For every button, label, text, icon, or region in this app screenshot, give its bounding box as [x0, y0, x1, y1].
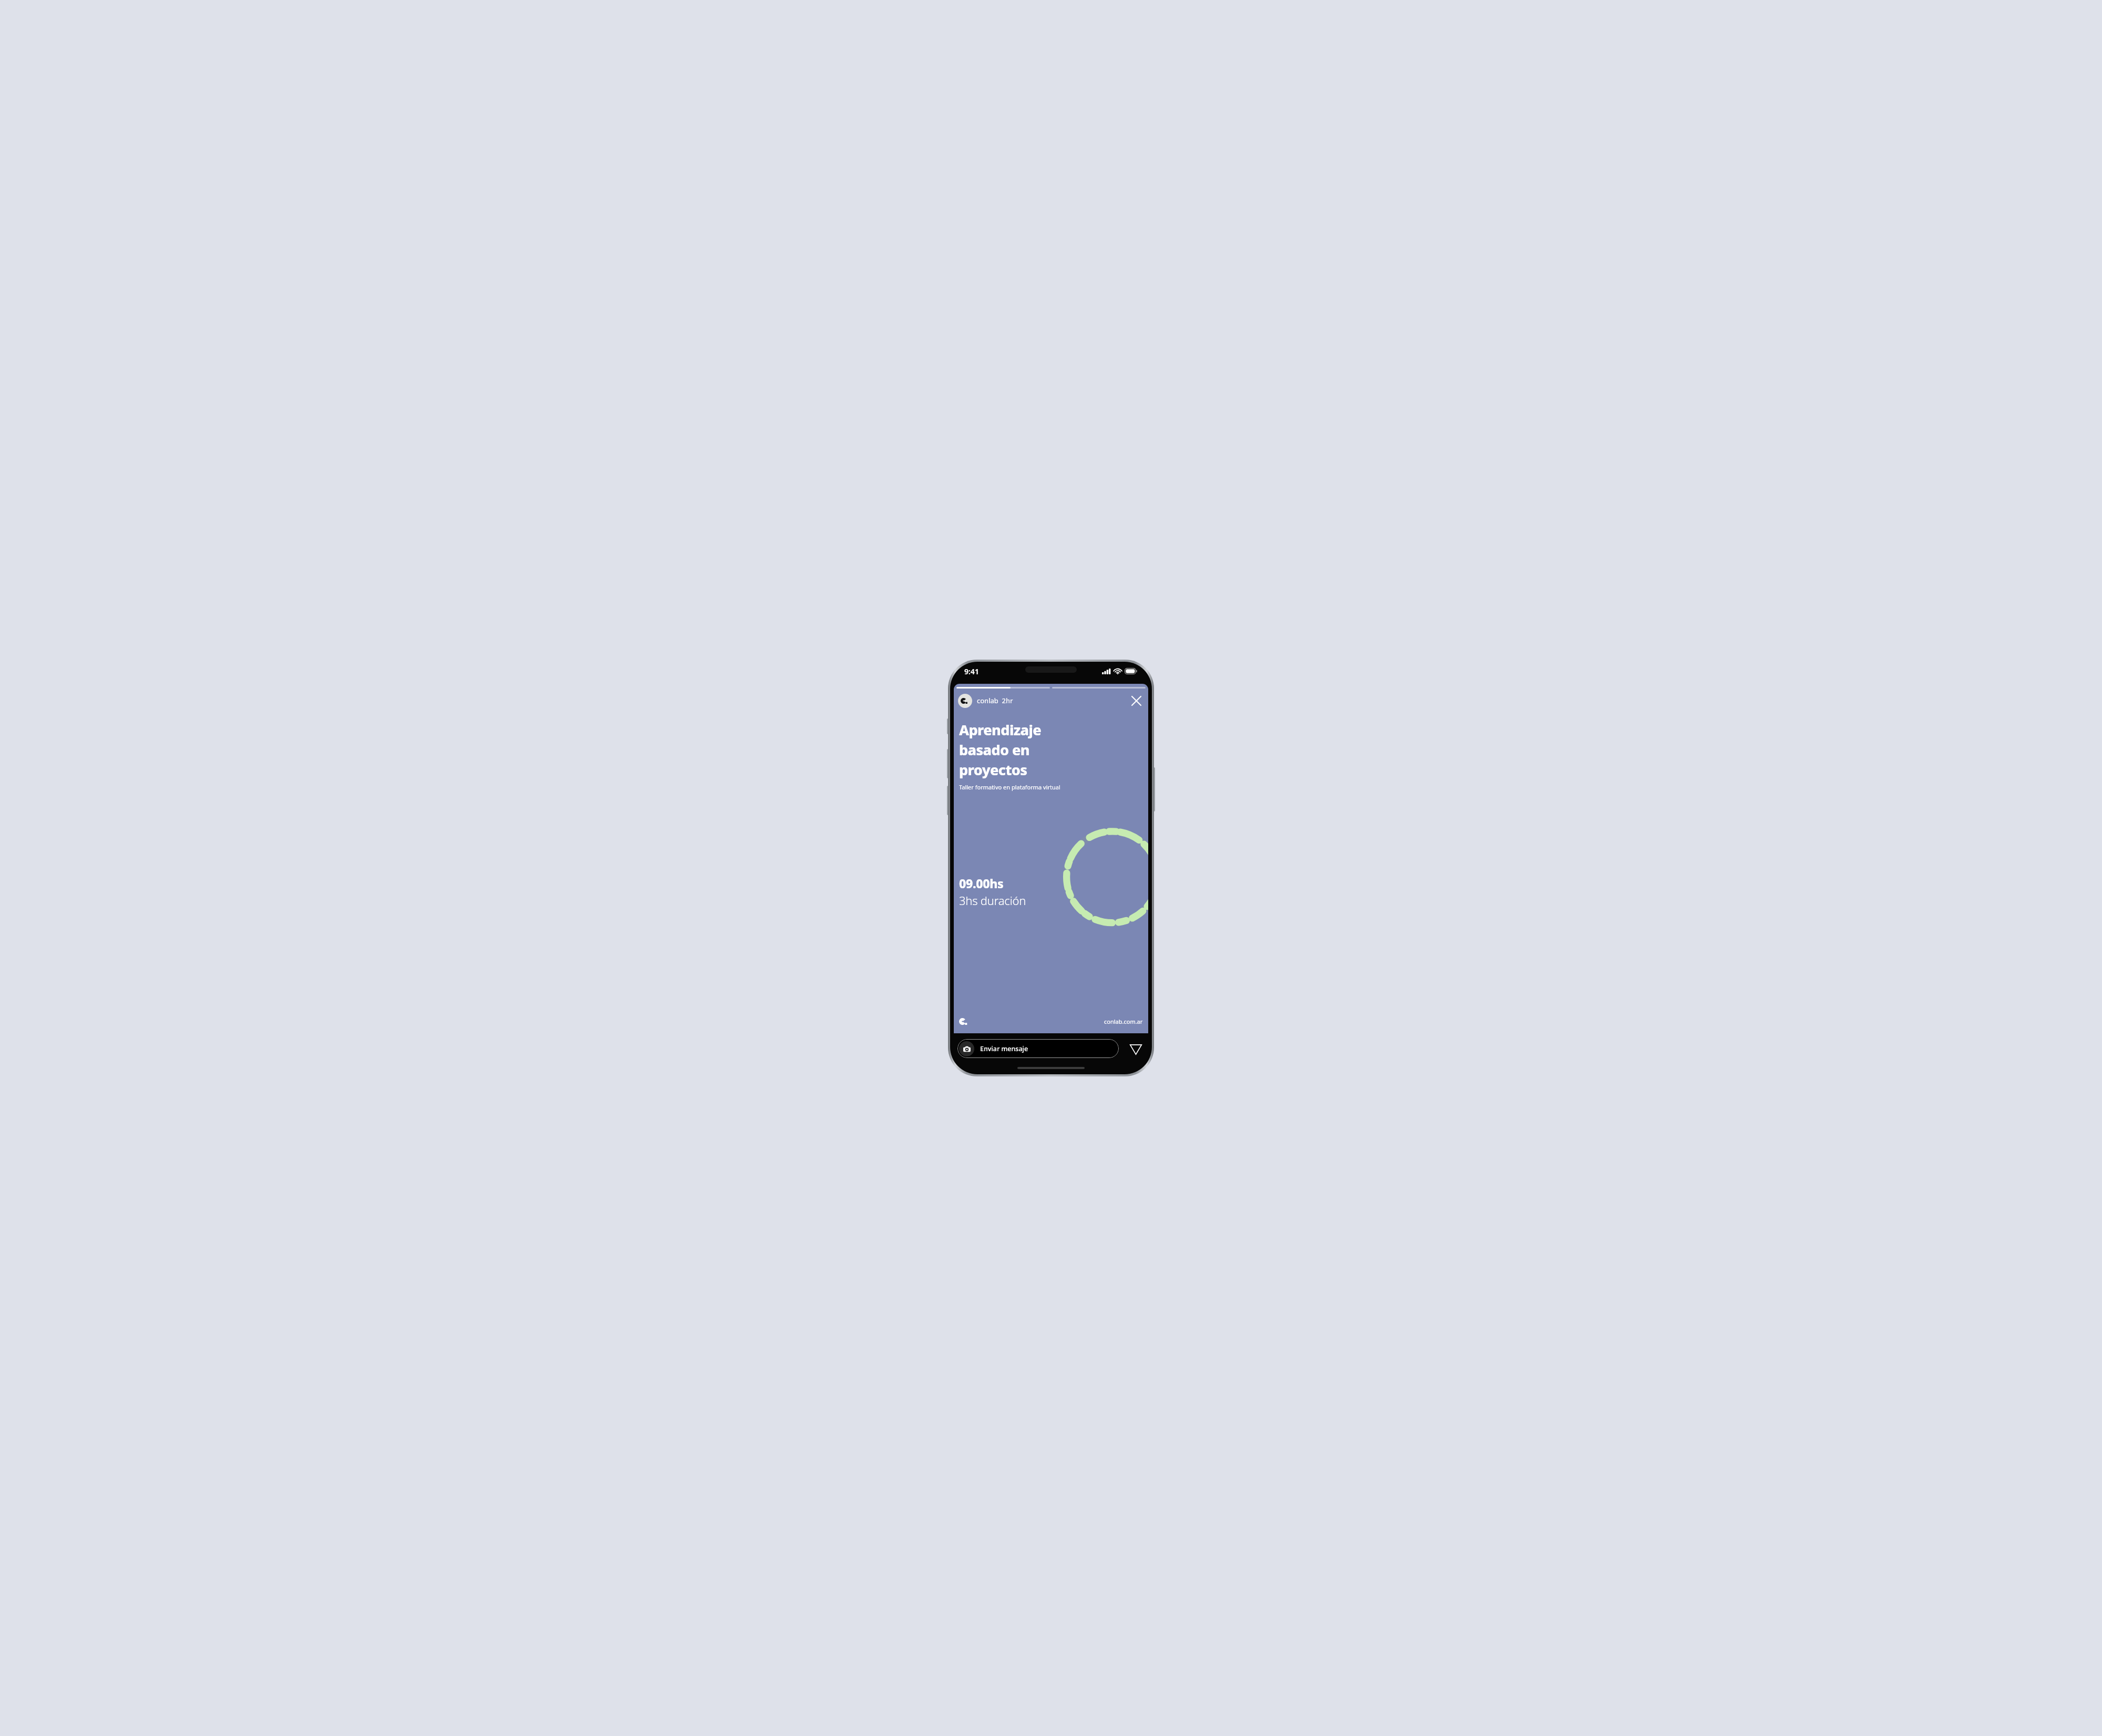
- button[interactable]: Enviar: [1127, 1040, 1145, 1057]
- staticText: proyectos: [959, 760, 1027, 779]
- staticText: basado en: [959, 740, 1029, 759]
- button[interactable]: [958, 694, 972, 708]
- button[interactable]: conlab.com.ar: [1104, 1018, 1143, 1025]
- button[interactable]: Enviar mensaje: [957, 1039, 1119, 1058]
- button[interactable]: conlab 2hr: [977, 696, 1013, 705]
- staticText: Aprendizaje: [959, 720, 1041, 739]
- staticText: Enviar mensaje: [980, 1044, 1028, 1053]
- staticText: 9:41: [964, 666, 979, 676]
- staticText: 3hs duración: [959, 892, 1026, 908]
- staticText: Taller formativo en plataforma virtual: [959, 783, 1060, 791]
- button[interactable]: Cerrar: [1128, 693, 1144, 708]
- staticText: 09.00hs: [959, 875, 1004, 891]
